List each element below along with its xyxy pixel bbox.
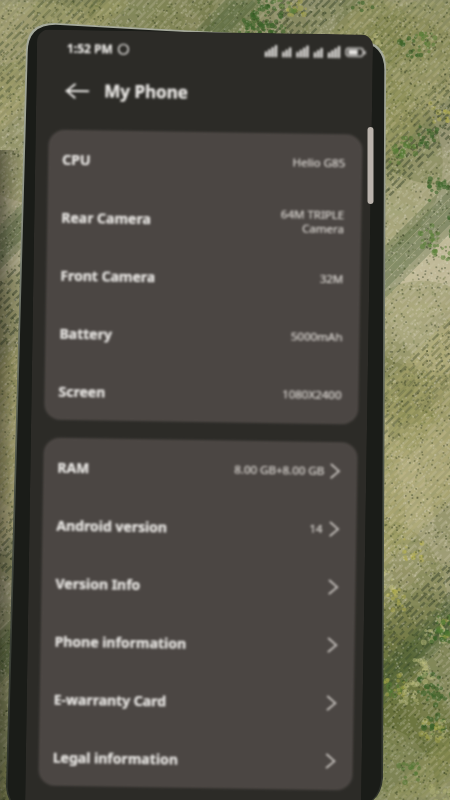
staticText: Battery <box>59 324 113 344</box>
staticText: 1080X2400 <box>281 386 342 403</box>
button[interactable]: Rear Camera <box>61 188 345 250</box>
button[interactable]: CPU <box>62 130 346 192</box>
staticText: Android version <box>56 516 168 536</box>
staticText: 1:52 PM <box>67 40 113 57</box>
staticText: 8.00 GB+8.00 GB <box>234 462 324 479</box>
button[interactable]: Front Camera <box>60 246 344 308</box>
staticText: My Phone <box>104 79 188 104</box>
staticText: Screen <box>58 382 106 401</box>
staticText: Rear Camera <box>61 208 151 228</box>
staticText: 5000mAh <box>290 328 342 345</box>
staticText: 32M <box>319 271 343 287</box>
staticText: Front Camera <box>60 266 155 286</box>
button[interactable]: Legal information <box>52 728 336 790</box>
button[interactable]: Battery <box>59 304 343 366</box>
button[interactable]: Version Info <box>55 554 339 616</box>
staticText: E-warranty Card <box>54 690 167 711</box>
staticText: 14 <box>309 521 323 537</box>
staticText: Helio G85 <box>292 154 345 171</box>
staticText: Phone information <box>54 632 187 653</box>
button[interactable]: Phone information <box>54 612 338 674</box>
button[interactable]: Screen <box>58 362 342 424</box>
staticText: RAM <box>57 458 90 477</box>
staticText: 64M TRIPLE Camera <box>280 206 344 236</box>
staticText: CPU <box>62 150 91 169</box>
button[interactable]: Back <box>61 75 93 107</box>
button[interactable]: RAM <box>57 438 341 500</box>
staticText: Version Info <box>55 574 141 594</box>
button[interactable]: Android version <box>56 496 340 558</box>
staticText: Legal information <box>53 748 179 769</box>
button[interactable]: E-warranty Card <box>53 670 337 732</box>
